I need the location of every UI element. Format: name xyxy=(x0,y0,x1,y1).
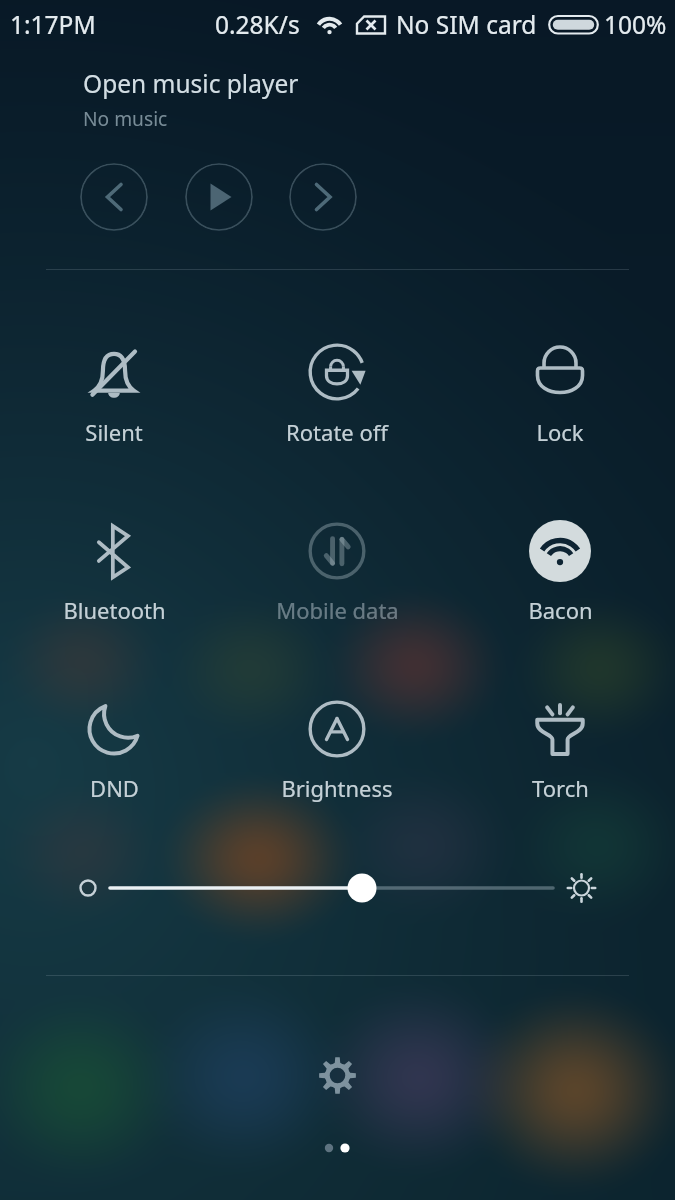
staticText: DND xyxy=(90,773,139,803)
button[interactable]: Rotate off xyxy=(237,330,437,434)
staticText: Silent xyxy=(85,417,143,447)
staticText: Bluetooth xyxy=(63,595,166,625)
button[interactable]: Brightness xyxy=(237,687,437,791)
button[interactable]: Torch xyxy=(460,687,660,791)
button[interactable]: Mobile data xyxy=(237,509,437,613)
staticText: No SIM card xyxy=(396,8,537,41)
button[interactable]: Brightness slider xyxy=(60,862,620,914)
button[interactable]: Bluetooth xyxy=(14,509,214,613)
staticText: Rotate off xyxy=(286,417,388,447)
staticText: Torch xyxy=(532,773,589,803)
staticText: 1:17PM xyxy=(10,8,96,41)
button[interactable]: Bacon xyxy=(460,509,660,613)
button[interactable]: Play xyxy=(185,163,253,231)
staticText: Lock xyxy=(536,417,584,447)
staticText: Mobile data xyxy=(276,595,399,625)
button[interactable]: Lock xyxy=(460,330,660,434)
staticText: 0.28K/s xyxy=(215,8,300,41)
button[interactable]: Settings xyxy=(305,1043,369,1107)
button[interactable]: Previous track xyxy=(80,163,148,231)
staticText: Bacon xyxy=(528,595,593,625)
button[interactable]: Silent xyxy=(14,330,214,434)
button[interactable]: Open music player xyxy=(83,67,299,100)
button[interactable]: DND xyxy=(14,687,214,791)
staticText: 100% xyxy=(604,8,667,41)
staticText: Brightness xyxy=(281,773,393,803)
button[interactable]: Next track xyxy=(289,163,357,231)
staticText: No music xyxy=(83,105,168,131)
